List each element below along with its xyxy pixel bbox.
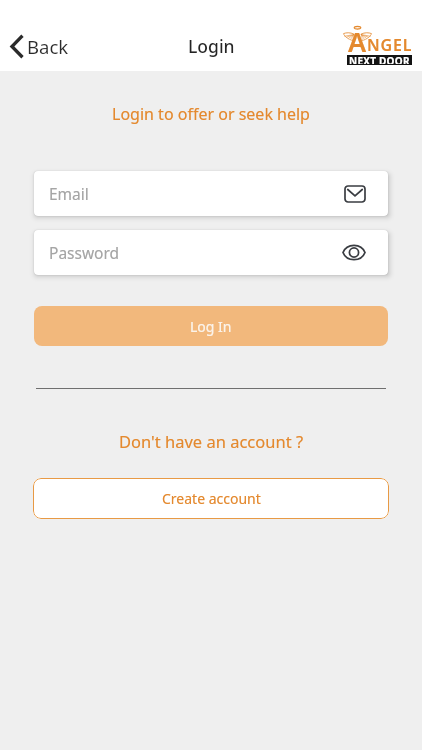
staticText: Password xyxy=(49,242,120,263)
staticText: Don't have an account ? xyxy=(0,430,422,452)
button[interactable]: Back xyxy=(5,30,75,63)
other: Show password xyxy=(342,244,366,261)
button[interactable]: Email xyxy=(34,171,388,216)
staticText: Log In xyxy=(190,317,232,336)
staticText: Email xyxy=(49,183,89,204)
staticText: Login xyxy=(188,34,235,58)
staticText: Create account xyxy=(162,489,261,508)
staticText: NGEL xyxy=(367,34,413,56)
button[interactable]: Log In xyxy=(34,306,388,346)
button[interactable]: Password xyxy=(34,230,388,275)
staticText: Back xyxy=(27,34,69,59)
staticText: A xyxy=(348,23,367,60)
staticText: Login to offer or seek help xyxy=(0,103,422,125)
button[interactable]: Create account xyxy=(33,478,389,519)
other: Email xyxy=(344,185,366,203)
staticText: NEXT DOOR xyxy=(349,54,410,64)
